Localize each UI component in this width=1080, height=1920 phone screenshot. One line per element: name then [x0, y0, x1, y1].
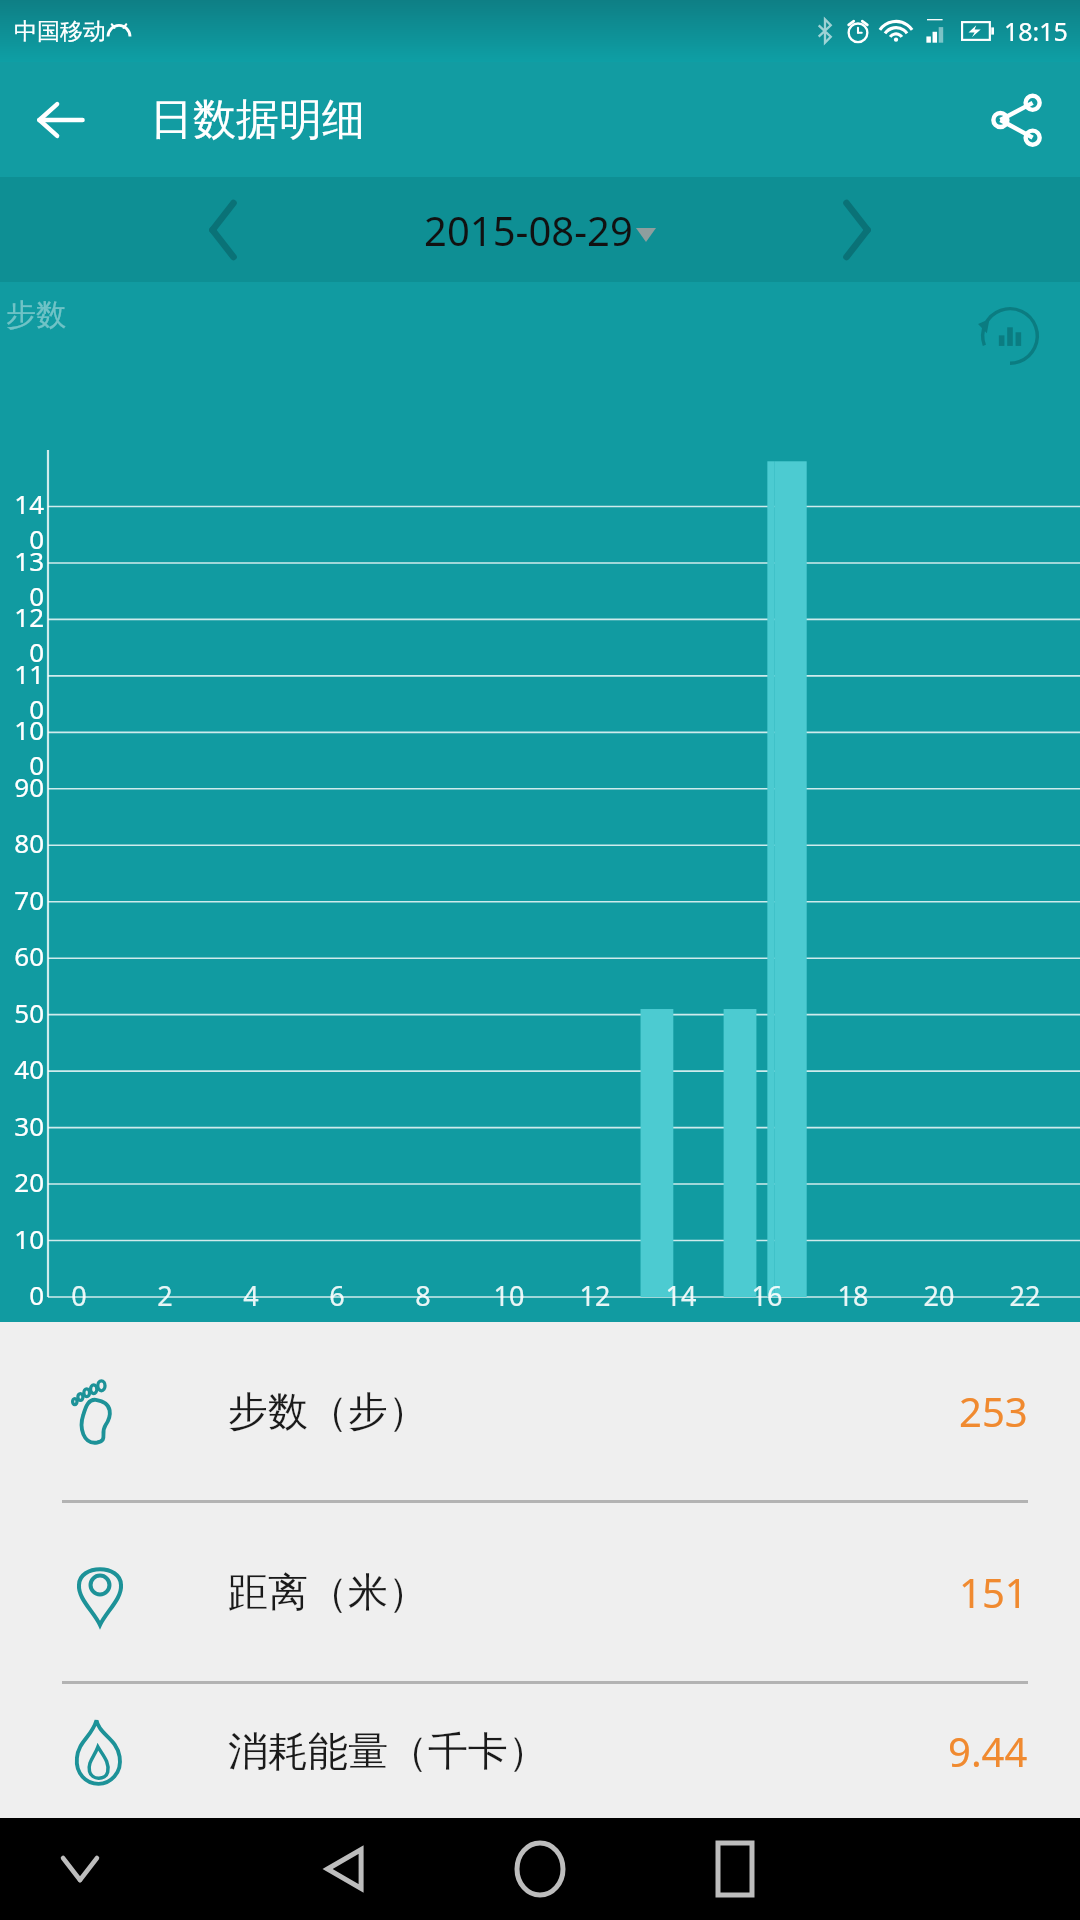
staticText: 日数据明细 [150, 93, 365, 147]
staticText: 50 [0, 995, 44, 1030]
staticText: 14 [638, 1277, 724, 1314]
button[interactable]: Back [300, 1824, 390, 1914]
button[interactable]: 距离（米） [0, 1503, 1080, 1681]
staticText: 8 [380, 1277, 466, 1314]
staticText: 60 [0, 938, 44, 973]
staticText: 151 [959, 1565, 1028, 1619]
button[interactable]: Hide keyboard [48, 1837, 112, 1901]
staticText: 0 [36, 1277, 122, 1314]
staticText: 253 [959, 1384, 1028, 1438]
staticText: 0 [0, 1277, 44, 1312]
staticText: 40 [0, 1051, 44, 1086]
staticText: 110 [0, 656, 44, 726]
staticText: 20 [896, 1277, 982, 1314]
staticText: 16 [724, 1277, 810, 1314]
staticText: 6 [294, 1277, 380, 1314]
button[interactable]: 消耗能量（千卡） [0, 1684, 1080, 1818]
staticText: 消耗能量（千卡） [228, 1726, 548, 1776]
staticText: 距离（米） [228, 1567, 428, 1617]
staticText: 120 [0, 599, 44, 669]
staticText: 70 [0, 882, 44, 917]
staticText: 2015-08-29 [424, 203, 633, 257]
staticText: 10 [466, 1277, 552, 1314]
staticText: 10 [0, 1221, 44, 1256]
button[interactable]: Previous day [188, 195, 258, 265]
button[interactable]: Next day [822, 195, 892, 265]
staticText: 80 [0, 825, 44, 860]
staticText: 12 [552, 1277, 638, 1314]
staticText: 18 [810, 1277, 896, 1314]
staticText: 20 [0, 1164, 44, 1199]
staticText: 100 [0, 712, 44, 782]
staticText: 步数（步） [228, 1386, 428, 1436]
staticText: 2 [122, 1277, 208, 1314]
staticText: 9.44 [948, 1724, 1028, 1778]
staticText: 18:15 [1004, 14, 1068, 48]
staticText: 140 [0, 486, 44, 556]
staticText: 4 [208, 1277, 294, 1314]
staticText: 90 [0, 769, 44, 804]
staticText: 中国移动 [14, 17, 106, 46]
button[interactable]: 2015-08-29 [424, 203, 656, 257]
button[interactable]: Recents [690, 1824, 780, 1914]
staticText: 30 [0, 1108, 44, 1143]
button[interactable]: Back [28, 87, 94, 153]
button[interactable]: Home [495, 1824, 585, 1914]
staticText: 22 [982, 1277, 1068, 1314]
button[interactable]: 步数（步） [0, 1322, 1080, 1500]
staticText: 步数 [6, 296, 66, 334]
button[interactable]: Switch chart [970, 296, 1050, 376]
staticText: 130 [0, 543, 44, 613]
button[interactable]: Share [980, 84, 1052, 156]
